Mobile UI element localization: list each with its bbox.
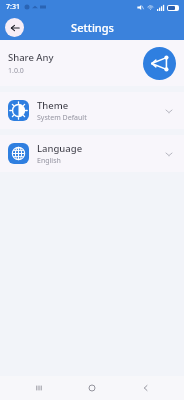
staticText: Settings <box>71 20 114 35</box>
staticText: System Default <box>37 113 87 123</box>
button[interactable]: Back <box>131 376 161 400</box>
staticText: 1.0.0 <box>8 66 24 76</box>
staticText: Share Any <box>8 51 54 64</box>
button[interactable]: Recents <box>24 376 54 400</box>
staticText: 7:31 <box>6 2 20 12</box>
button[interactable]: Theme <box>0 92 184 129</box>
staticText: English <box>37 156 61 166</box>
staticText: Language <box>37 142 83 155</box>
button[interactable]: Back <box>5 18 24 37</box>
button[interactable]: Language <box>0 135 184 172</box>
staticText: Theme <box>37 99 69 112</box>
button[interactable]: Home <box>77 376 107 400</box>
